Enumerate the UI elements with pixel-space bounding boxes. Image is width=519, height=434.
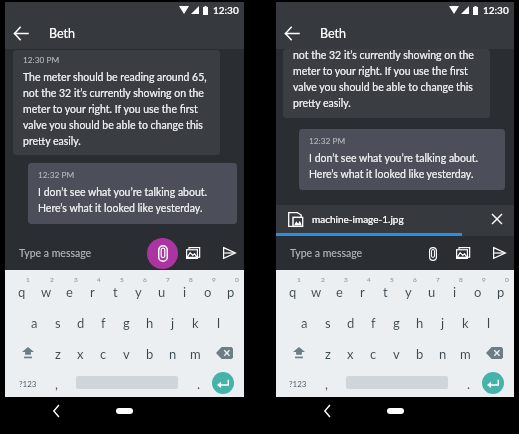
button[interactable]: Shift (281, 337, 316, 368)
button[interactable]: 5 (374, 275, 397, 306)
button[interactable]: Home (116, 408, 133, 414)
button[interactable]: 5 (104, 275, 127, 306)
button[interactable]: z (46, 337, 69, 368)
button[interactable]: machine-image-1.jpg (276, 205, 514, 233)
button[interactable]: h (408, 306, 431, 337)
button[interactable]: 8 (443, 275, 466, 306)
button[interactable]: Remove attachment (484, 206, 510, 232)
button[interactable]: . (457, 368, 481, 397)
button[interactable]: n (431, 337, 454, 368)
button[interactable]: 7 (150, 275, 173, 306)
button[interactable]: v (385, 337, 408, 368)
button[interactable]: f (92, 306, 115, 337)
button[interactable]: 6 (127, 275, 150, 306)
button[interactable]: f (362, 306, 385, 337)
button[interactable]: g (115, 306, 138, 337)
button[interactable]: z (316, 337, 339, 368)
button[interactable]: Backspace (207, 337, 242, 368)
button[interactable]: x (339, 337, 362, 368)
button[interactable]: 0 (489, 275, 512, 306)
button[interactable]: 1 (281, 275, 305, 306)
button[interactable]: s (46, 306, 69, 337)
button[interactable]: Insert image (450, 240, 476, 266)
button[interactable]: 0 (219, 275, 242, 306)
button[interactable]: Back (324, 405, 331, 417)
staticText: f (371, 315, 376, 331)
staticText: m (190, 346, 201, 362)
button[interactable]: Insert image (180, 240, 206, 266)
button[interactable]: a (293, 306, 316, 337)
button[interactable]: c (92, 337, 115, 368)
button[interactable]: ?123 (10, 368, 45, 397)
button[interactable]: h (138, 306, 161, 337)
button[interactable] (67, 368, 187, 397)
button[interactable]: d (69, 306, 92, 337)
button[interactable]: 4 (81, 275, 104, 306)
staticText: e (336, 284, 343, 300)
button[interactable]: , (45, 368, 67, 397)
button[interactable]: 3 (58, 275, 81, 306)
staticText: k (462, 315, 469, 331)
button[interactable]: Shift (10, 337, 46, 368)
button[interactable]: m (454, 337, 477, 368)
button[interactable]: 12:32 PM (28, 163, 237, 224)
button[interactable]: Enter (481, 368, 512, 397)
button[interactable]: 12:32 PM (299, 129, 505, 190)
button[interactable]: b (138, 337, 161, 368)
button[interactable]: not the 32 it’s currently showing on the… (283, 49, 490, 118)
staticText: d (77, 315, 85, 331)
button[interactable]: 2 (34, 275, 58, 306)
button[interactable]: m (184, 337, 207, 368)
button[interactable]: . (187, 368, 211, 397)
staticText: t (113, 284, 118, 300)
button[interactable]: Back (5, 18, 37, 49)
button[interactable]: Enter (211, 368, 242, 397)
button[interactable]: , (315, 368, 337, 397)
button[interactable]: d (339, 306, 362, 337)
button[interactable]: v (115, 337, 138, 368)
staticText: ?123 (289, 379, 307, 389)
button[interactable]: 8 (173, 275, 196, 306)
button[interactable]: c (362, 337, 385, 368)
staticText: o (204, 284, 212, 300)
button[interactable]: j (431, 306, 454, 337)
staticText: Type a message (19, 247, 92, 260)
button[interactable]: 9 (466, 275, 489, 306)
staticText: x (347, 346, 354, 362)
button[interactable]: j (161, 306, 184, 337)
button[interactable]: s (316, 306, 339, 337)
button[interactable]: Home (387, 408, 404, 414)
button[interactable]: 7 (420, 275, 443, 306)
staticText: s (55, 315, 61, 331)
staticText: 5 (390, 276, 394, 284)
button[interactable]: 12:30 PM (13, 50, 220, 155)
button[interactable]: g (385, 306, 408, 337)
button[interactable]: Send (486, 240, 512, 266)
button[interactable]: l (207, 306, 230, 337)
button[interactable]: 9 (196, 275, 219, 306)
button[interactable]: Backspace (477, 337, 512, 368)
button[interactable]: Back (53, 405, 60, 417)
button[interactable]: ?123 (281, 368, 315, 397)
button[interactable]: Back (276, 18, 308, 49)
button[interactable]: Send (216, 240, 242, 266)
button[interactable]: 2 (305, 275, 328, 306)
button[interactable]: 3 (328, 275, 351, 306)
button[interactable] (337, 368, 457, 397)
button[interactable]: Attach file (147, 238, 178, 269)
button[interactable]: l (477, 306, 500, 337)
button[interactable]: x (69, 337, 92, 368)
button[interactable]: b (408, 337, 431, 368)
staticText: q (18, 284, 26, 300)
button[interactable]: a (23, 306, 46, 337)
button[interactable]: Attach file (417, 238, 448, 269)
staticText: The meter should be reading around 65, n… (23, 71, 210, 148)
button[interactable]: k (184, 306, 207, 337)
button[interactable]: n (161, 337, 184, 368)
staticText: w (41, 284, 52, 300)
button[interactable]: 1 (10, 275, 34, 306)
staticText: n (169, 346, 177, 362)
button[interactable]: k (454, 306, 477, 337)
button[interactable]: 6 (397, 275, 420, 306)
button[interactable]: 4 (351, 275, 374, 306)
